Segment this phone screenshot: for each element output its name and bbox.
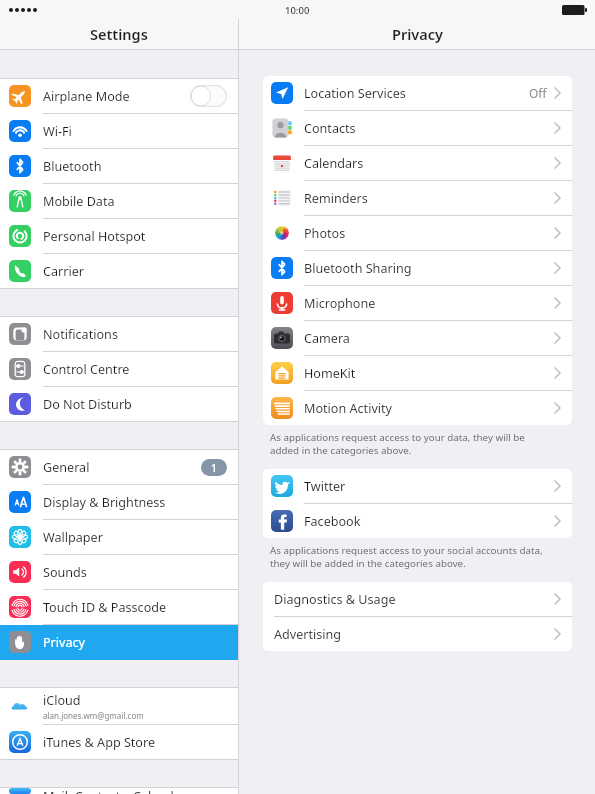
staticText: Mobile Data bbox=[43, 193, 115, 210]
staticText: 10:00 bbox=[285, 4, 310, 17]
staticText: Carrier bbox=[43, 263, 84, 280]
staticText: Contacts bbox=[304, 120, 554, 137]
button[interactable]: Location Services bbox=[263, 76, 572, 111]
staticText: Bluetooth Sharing bbox=[304, 260, 554, 277]
staticText: Location Services bbox=[304, 85, 529, 102]
staticText: Wallpaper bbox=[43, 529, 103, 546]
button[interactable]: Wi-Fi bbox=[0, 114, 238, 149]
button[interactable]: Airplane Mode toggle bbox=[190, 85, 227, 107]
staticText: Control Centre bbox=[43, 361, 130, 378]
staticText: 1 bbox=[211, 461, 218, 475]
button[interactable]: Diagnostics & Usage bbox=[263, 582, 572, 617]
staticText: Mail, Contacts, Calendars bbox=[43, 788, 193, 794]
staticText: Advertising bbox=[274, 626, 554, 643]
staticText: Privacy bbox=[43, 634, 86, 651]
button[interactable]: General bbox=[0, 450, 238, 485]
button[interactable]: Airplane Mode bbox=[0, 79, 238, 114]
button[interactable]: Facebook bbox=[263, 504, 572, 538]
button[interactable]: Mobile Data bbox=[0, 184, 238, 219]
staticText: Microphone bbox=[304, 295, 554, 312]
staticText: Calendars bbox=[304, 155, 554, 172]
staticText: As applications request access to your d… bbox=[270, 431, 525, 457]
button[interactable]: Privacy bbox=[0, 625, 238, 660]
staticText: Bluetooth bbox=[43, 158, 102, 175]
button[interactable]: Bluetooth Sharing bbox=[263, 251, 572, 286]
staticText: Privacy bbox=[392, 24, 443, 44]
button[interactable]: Microphone bbox=[263, 286, 572, 321]
button[interactable]: Notifications bbox=[0, 317, 238, 352]
button[interactable]: Photos bbox=[263, 216, 572, 251]
button[interactable]: Camera bbox=[263, 321, 572, 356]
staticText: Wi-Fi bbox=[43, 123, 72, 140]
button[interactable]: Do Not Disturb bbox=[0, 387, 238, 422]
button[interactable]: Carrier bbox=[0, 254, 238, 289]
button[interactable]: Twitter bbox=[263, 469, 572, 504]
button[interactable]: iTunes & App Store bbox=[0, 725, 238, 760]
button[interactable]: Reminders bbox=[263, 181, 572, 216]
button[interactable]: Mail, Contacts, Calendars bbox=[0, 788, 238, 794]
staticText: Airplane Mode bbox=[43, 88, 130, 105]
staticText: Reminders bbox=[304, 190, 554, 207]
staticText: iCloud bbox=[43, 692, 81, 709]
staticText: Display & Brightness bbox=[43, 494, 166, 511]
button[interactable]: Touch ID & Passcode bbox=[0, 590, 238, 625]
button[interactable]: Control Centre bbox=[0, 352, 238, 387]
staticText: Settings bbox=[90, 24, 148, 44]
button[interactable]: HomeKit bbox=[263, 356, 572, 391]
staticText: General bbox=[43, 459, 90, 476]
staticText: HomeKit bbox=[304, 365, 554, 382]
staticText: Off bbox=[529, 85, 547, 101]
staticText: Diagnostics & Usage bbox=[274, 591, 554, 608]
staticText: Touch ID & Passcode bbox=[43, 599, 167, 616]
button[interactable]: Contacts bbox=[263, 111, 572, 146]
staticText: Sounds bbox=[43, 564, 87, 581]
staticText: Twitter bbox=[304, 478, 554, 495]
staticText: iTunes & App Store bbox=[43, 734, 156, 751]
button[interactable]: Display & Brightness bbox=[0, 485, 238, 520]
staticText: Facebook bbox=[304, 513, 554, 530]
staticText: Camera bbox=[304, 330, 554, 347]
button[interactable]: Calendars bbox=[263, 146, 572, 181]
staticText: alan.jones.wm@gmail.com bbox=[43, 710, 144, 721]
button[interactable]: Personal Hotspot bbox=[0, 219, 238, 254]
staticText: Notifications bbox=[43, 326, 118, 343]
staticText: Do Not Disturb bbox=[43, 396, 132, 413]
button[interactable]: Motion Activity bbox=[263, 391, 572, 425]
button[interactable]: Sounds bbox=[0, 555, 238, 590]
staticText: Personal Hotspot bbox=[43, 228, 146, 245]
button[interactable]: Wallpaper bbox=[0, 520, 238, 555]
button[interactable]: Advertising bbox=[263, 617, 572, 651]
button[interactable]: iCloud bbox=[0, 688, 238, 725]
staticText: Photos bbox=[304, 225, 554, 242]
button[interactable]: Bluetooth bbox=[0, 149, 238, 184]
staticText: Motion Activity bbox=[304, 400, 554, 417]
staticText: As applications request access to your s… bbox=[270, 544, 543, 570]
